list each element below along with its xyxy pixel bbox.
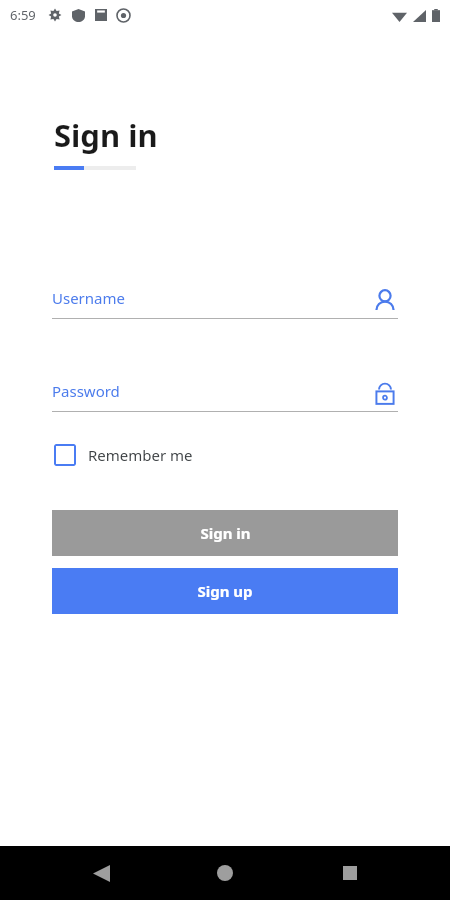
button[interactable]: Recent apps — [326, 849, 374, 897]
button[interactable]: Back — [77, 849, 125, 897]
button[interactable]: Sign up — [52, 568, 398, 614]
button[interactable]: Username — [52, 288, 398, 319]
staticText: Sign up — [197, 581, 253, 601]
button[interactable]: Sign in — [52, 510, 398, 556]
staticText: 6:59 — [10, 6, 36, 24]
button[interactable]: Remember me — [54, 444, 193, 466]
staticText: Password — [52, 381, 120, 401]
staticText: Username — [52, 288, 125, 308]
staticText: Sign in — [54, 114, 158, 156]
button[interactable]: Home — [201, 849, 249, 897]
staticText: Sign in — [200, 523, 251, 543]
staticText: Remember me — [88, 445, 193, 465]
button[interactable]: Password — [52, 381, 398, 412]
